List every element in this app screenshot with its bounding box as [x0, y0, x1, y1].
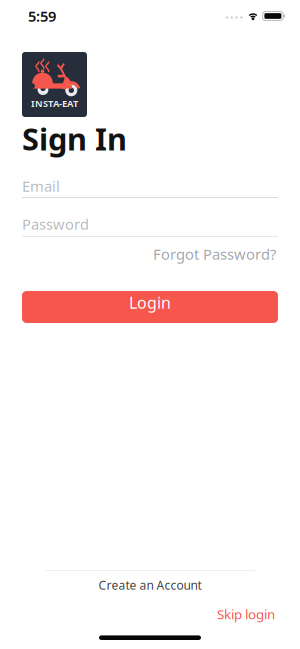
staticText: Password — [22, 214, 89, 234]
button[interactable]: Skip login — [217, 608, 275, 620]
button[interactable]: Login — [0, 291, 300, 323]
staticText: Email — [22, 176, 60, 196]
staticText: Skip login — [217, 605, 275, 623]
staticText: Create an Account — [98, 577, 201, 593]
staticText: 5:59 — [28, 6, 56, 26]
staticText: INSTA-EAT — [31, 97, 78, 110]
button[interactable]: Email — [0, 180, 300, 198]
staticText: Login — [129, 292, 171, 313]
button[interactable]: Password — [0, 218, 300, 237]
staticText: Forgot Password? — [153, 244, 276, 264]
staticText: Sign In — [22, 118, 127, 159]
button[interactable]: Create an Account — [98, 571, 201, 591]
button[interactable]: Forgot Password? — [153, 248, 276, 260]
